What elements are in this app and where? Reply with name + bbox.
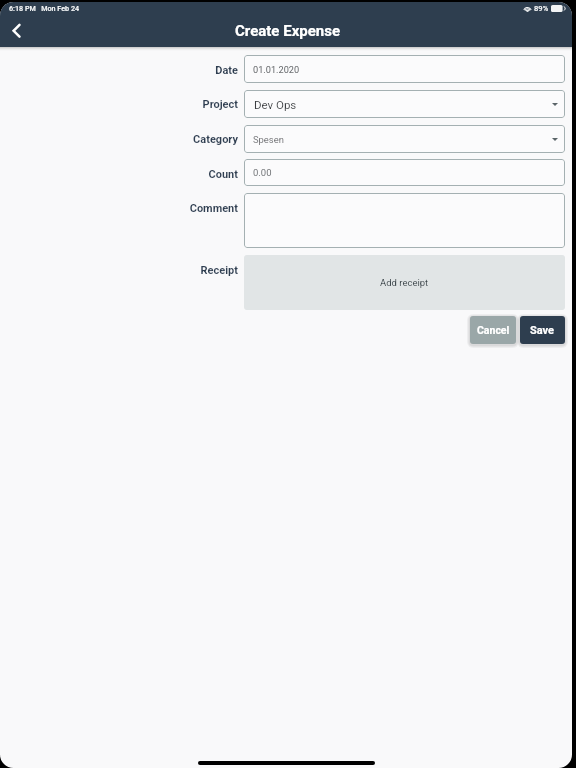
button[interactable]: Back [1,17,29,45]
staticText: Date [215,64,238,77]
staticText: Comment [189,202,238,215]
staticText: Dev Ops [254,98,297,111]
staticText: Create Expense [235,22,341,40]
staticText: 0.00 [253,167,272,178]
button[interactable]: Spesen [244,125,565,153]
button[interactable]: 01.01.2020 [244,55,565,83]
staticText: Count [208,168,238,181]
staticText: 89% [534,4,549,13]
button[interactable]: Cancel [470,316,516,344]
button[interactable]: Add receipt [244,255,565,310]
staticText: Add receipt [380,277,429,288]
staticText: Project [202,98,238,111]
staticText: Cancel [477,324,510,336]
button[interactable]: Save [520,316,565,344]
staticText: Save [530,324,555,337]
button[interactable] [244,193,565,248]
button[interactable]: Dev Ops [244,90,565,118]
button[interactable]: 0.00 [244,159,565,186]
staticText: 6:18 PM Mon Feb 24 [9,4,80,12]
staticText: 01.01.2020 [253,64,300,75]
staticText: Receipt [200,264,238,277]
staticText: Spesen [253,134,284,145]
staticText: Category [193,133,238,146]
